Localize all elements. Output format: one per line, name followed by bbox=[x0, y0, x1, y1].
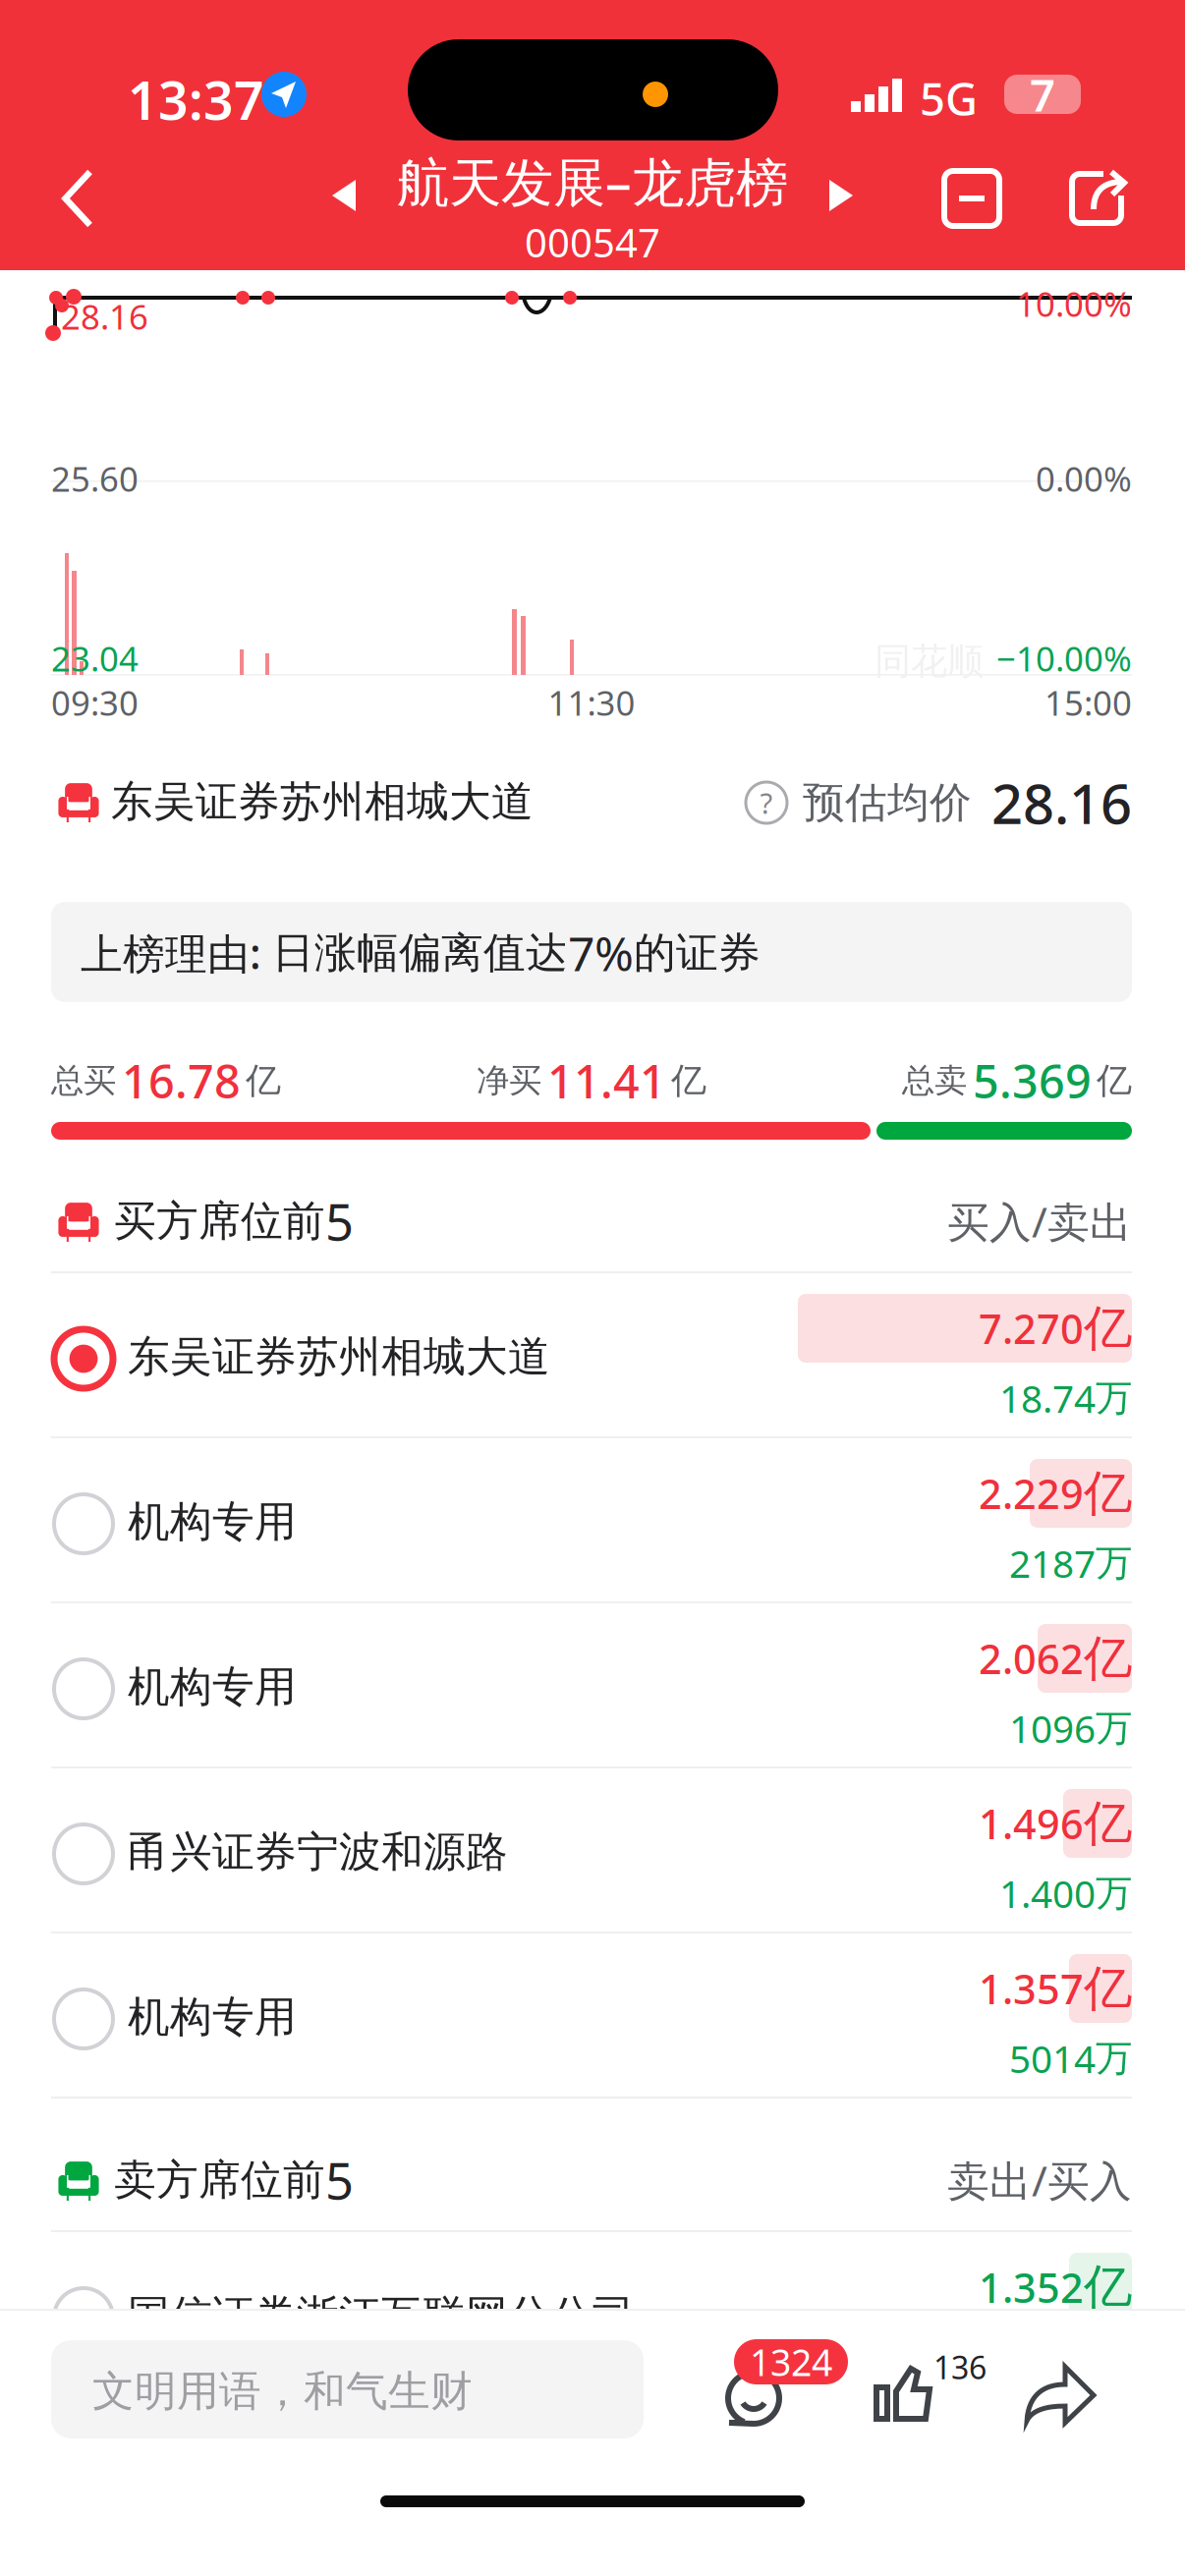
staticText: 机构专用 bbox=[128, 1661, 297, 1713]
staticText: 文明用语，和气生财 bbox=[92, 2366, 473, 2417]
staticText: 2.229 bbox=[979, 1466, 1084, 1520]
button[interactable]: 文明用语，和气生财 bbox=[51, 2340, 644, 2438]
button[interactable]: 机构专用 bbox=[0, 1603, 1185, 1768]
button[interactable]: 机构专用 bbox=[0, 1933, 1185, 2099]
staticText: 25.60 bbox=[51, 456, 139, 501]
staticText: 亿 bbox=[1084, 1299, 1132, 1358]
staticText: 136 bbox=[933, 2346, 987, 2388]
staticText: 亿 bbox=[1084, 1794, 1132, 1853]
staticText: 11.41 bbox=[547, 1050, 666, 1111]
staticText: 1.357 bbox=[979, 1962, 1084, 2016]
staticText: 1.352 bbox=[979, 2260, 1084, 2314]
staticText: 亿 bbox=[671, 1059, 706, 1102]
staticText: 预估均价 bbox=[803, 777, 972, 828]
staticText: 总卖 bbox=[902, 1061, 967, 1101]
staticText: 5.369 bbox=[973, 1050, 1092, 1111]
staticText: 0.00% bbox=[1036, 456, 1132, 501]
staticText: 000547 bbox=[525, 216, 660, 268]
staticText: 5 bbox=[325, 2147, 354, 2213]
staticText: 买方席位前 bbox=[114, 1195, 325, 1247]
staticText: 2187 bbox=[1009, 1538, 1096, 1588]
button[interactable]: Comments bbox=[717, 2330, 845, 2446]
staticText: ? bbox=[760, 784, 773, 822]
staticText: 09:30 bbox=[51, 680, 139, 725]
staticText: 2731 bbox=[1009, 2332, 1096, 2382]
staticText: 的证券 bbox=[634, 927, 761, 979]
staticText: 卖方席位前 bbox=[114, 2154, 325, 2206]
staticText: 13:37 bbox=[128, 65, 264, 134]
staticText: 国信证券浙江互联网分公司 bbox=[128, 2290, 635, 2341]
staticText: 1324 bbox=[750, 2337, 832, 2386]
staticText: 5 bbox=[325, 1188, 354, 1254]
button[interactable]: Back bbox=[33, 155, 122, 242]
staticText: −10.00% bbox=[996, 636, 1132, 681]
button[interactable]: 国信证券浙江互联网分公司 bbox=[0, 2232, 1185, 2397]
button[interactable]: Share bbox=[1012, 2330, 1120, 2446]
staticText: 航天发展–龙虎榜 bbox=[397, 146, 788, 216]
staticText: 亿 bbox=[1084, 1629, 1132, 1688]
staticText: 万 bbox=[1096, 1706, 1132, 1751]
staticText: 7.270 bbox=[979, 1301, 1084, 1355]
staticText: 净买 bbox=[477, 1061, 541, 1101]
staticText: 卖出/买入 bbox=[947, 2152, 1132, 2208]
staticText: 1096 bbox=[1009, 1703, 1096, 1753]
staticText: 日涨幅偏离值达 bbox=[272, 927, 568, 979]
staticText: 买入/卖出 bbox=[947, 1193, 1132, 1249]
staticText: 11:30 bbox=[548, 680, 635, 725]
staticText: 亿 bbox=[1097, 1059, 1132, 1102]
staticText: 1.496 bbox=[979, 1797, 1084, 1850]
button[interactable]: Minimize bbox=[928, 155, 1016, 242]
button[interactable]: Like bbox=[865, 2330, 996, 2446]
staticText: 亿 bbox=[1084, 1959, 1132, 2018]
staticText: 23.04 bbox=[51, 636, 139, 681]
button[interactable]: 机构专用 bbox=[0, 1438, 1185, 1603]
staticText: 7 bbox=[1030, 65, 1055, 124]
staticText: 2.062 bbox=[979, 1631, 1084, 1685]
button[interactable]: Share bbox=[1053, 155, 1142, 242]
staticText: 5014 bbox=[1009, 2033, 1096, 2083]
staticText: 万 bbox=[1096, 1376, 1132, 1421]
staticText: 东吴证券苏州相城大道 bbox=[128, 1331, 550, 1383]
staticText: 15:00 bbox=[1044, 680, 1132, 725]
staticText: 10.00% bbox=[1016, 281, 1132, 326]
staticText: 亿 bbox=[246, 1059, 281, 1102]
staticText: 同花顺 bbox=[875, 639, 984, 684]
staticText: 万 bbox=[1096, 1871, 1132, 1916]
staticText: 万 bbox=[1096, 2036, 1132, 2081]
staticText: 18.74 bbox=[999, 1373, 1096, 1423]
staticText: 1.400 bbox=[999, 1868, 1096, 1918]
staticText: 机构专用 bbox=[128, 1496, 297, 1548]
staticText: 28.16 bbox=[991, 766, 1132, 839]
staticText: 东吴证券苏州相城大道 bbox=[111, 776, 534, 827]
staticText: 5G bbox=[920, 69, 978, 128]
button[interactable]: 东吴证券苏州相城大道 bbox=[0, 1273, 1185, 1438]
staticText: 上榜理由: bbox=[81, 925, 272, 981]
staticText: 亿 bbox=[1084, 2257, 1132, 2317]
staticText: 甬兴证券宁波和源路 bbox=[128, 1826, 508, 1878]
staticText: 7% bbox=[568, 922, 634, 984]
staticText: 16.78 bbox=[122, 1050, 241, 1111]
button[interactable]: 甬兴证券宁波和源路 bbox=[0, 1768, 1185, 1933]
staticText: 总买 bbox=[51, 1061, 116, 1101]
staticText: 28.16 bbox=[61, 294, 148, 339]
staticText: 机构专用 bbox=[128, 1991, 297, 2043]
staticText: 万 bbox=[1096, 1541, 1132, 1586]
staticText: 亿 bbox=[1084, 1464, 1132, 1523]
